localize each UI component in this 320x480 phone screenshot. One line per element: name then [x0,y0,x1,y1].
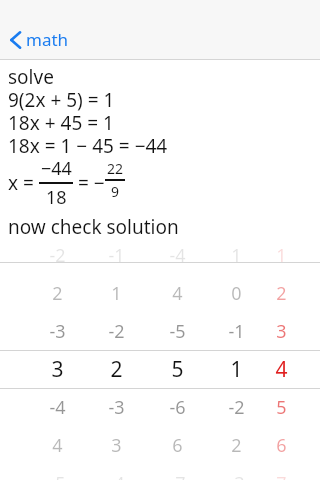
button[interactable]: -5 [147,312,207,350]
button[interactable]: 2 [86,350,146,388]
button[interactable]: 5 [147,350,207,388]
button[interactable]: 2 [27,274,87,312]
button[interactable]: 6 [251,426,311,464]
staticText: -2 [108,319,125,344]
staticText: -2 [228,395,245,420]
staticText: 2 [52,281,63,306]
staticText: -1 [108,243,125,268]
staticText: 1 [231,243,242,268]
staticText: -4 [169,243,186,268]
button[interactable]: 5 [251,388,311,426]
staticText: 7 [276,471,287,480]
staticText: 5 [171,355,184,384]
staticText: 3 [276,319,287,344]
staticText: 9(2x + 5) = 1 [8,87,115,113]
staticText: -5 [169,319,186,344]
staticText: -3 [49,319,66,344]
staticText: 3 [51,355,64,384]
button[interactable]: Back to math [7,24,72,55]
staticText: -6 [169,395,186,420]
staticText: math [26,28,69,51]
button[interactable]: 1 [86,274,146,312]
button[interactable]: -6 [147,388,207,426]
button[interactable]: 0 [206,274,266,312]
button[interactable]: -2 [206,388,266,426]
staticText: 1 [230,355,243,384]
staticText: 4 [172,281,183,306]
staticText: 22 [107,159,124,178]
staticText: 1 [276,243,287,268]
staticText: 2 [231,433,242,458]
button[interactable]: 7 [251,464,311,480]
staticText: 18x + 45 = 1 [8,110,114,136]
staticText: -4 [108,471,125,480]
staticText: now check solution [8,214,179,240]
staticText: 2 [110,355,123,384]
button[interactable]: -2 [27,236,87,274]
staticText: -7 [169,471,186,480]
button[interactable]: 6 [147,426,207,464]
staticText: 1 [111,281,122,306]
staticText: 0 [231,281,242,306]
staticText: -1 [228,319,245,344]
staticText: -3 [228,471,245,480]
button[interactable]: -4 [147,236,207,274]
staticText: 18 [46,185,67,210]
button[interactable]: 3 [86,426,146,464]
staticText: x = [8,170,39,196]
button[interactable]: -3 [86,388,146,426]
button[interactable]: -1 [206,312,266,350]
staticText: -4 [49,395,66,420]
button[interactable]: 3 [251,312,311,350]
button[interactable]: 1 [206,350,266,388]
button[interactable]: 3 [27,350,87,388]
button[interactable]: 1 [251,236,311,274]
button[interactable]: -2 [86,312,146,350]
button[interactable]: 1 [206,236,266,274]
staticText: -5 [49,471,66,480]
staticText: 6 [276,433,287,458]
staticText: 9 [111,182,120,201]
staticText: -3 [108,395,125,420]
staticText: 4 [52,433,63,458]
button[interactable]: 4 [27,426,87,464]
staticText: −44 [41,156,72,181]
button[interactable]: -1 [86,236,146,274]
staticText: 5 [276,395,287,420]
staticText: -2 [49,243,66,268]
staticText: 3 [111,433,122,458]
staticText: 2 [276,281,287,306]
button[interactable]: -3 [27,312,87,350]
staticText: = − [73,170,105,196]
button[interactable]: -4 [27,388,87,426]
staticText: 4 [275,355,288,384]
staticText: 6 [172,433,183,458]
staticText: solve [8,64,54,90]
button[interactable]: 4 [147,274,207,312]
button[interactable]: 2 [251,274,311,312]
button[interactable]: 4 [251,350,311,388]
staticText: 18x = 1 − 45 = −44 [8,133,168,159]
button[interactable]: 2 [206,426,266,464]
